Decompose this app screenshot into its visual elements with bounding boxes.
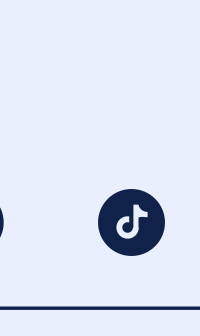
button[interactable]: Previous app xyxy=(0,189,4,256)
button[interactable]: TikTok xyxy=(98,189,165,256)
